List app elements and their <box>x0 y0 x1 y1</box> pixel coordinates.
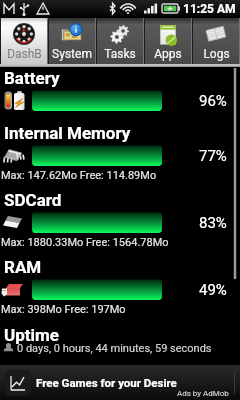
button[interactable]: Apps <box>144 18 192 64</box>
staticText: Uptime <box>4 325 59 345</box>
staticText: 0 days, 0 hours, 44 minutes, 59 seconds <box>17 342 212 355</box>
staticText: 77% <box>199 147 227 165</box>
staticText: 49% <box>199 281 227 299</box>
staticText: 83% <box>199 214 227 232</box>
staticText: Free Games for your Desire <box>36 376 177 389</box>
button[interactable]: Battery <box>0 68 240 118</box>
staticText: 96% <box>199 92 227 110</box>
staticText: RAM <box>4 257 42 277</box>
button[interactable]: Tasks <box>96 18 144 64</box>
staticText: SDCard <box>4 190 62 210</box>
staticText: Internal Memory <box>4 123 131 143</box>
button[interactable]: RAM <box>0 257 240 319</box>
staticText: Tasks <box>104 47 136 61</box>
staticText: 11:25 AM <box>183 2 236 16</box>
button[interactable]: Internal Memory <box>0 123 240 185</box>
staticText: DashB <box>7 47 42 61</box>
button[interactable]: Free Games for your Desire <box>0 365 240 400</box>
button[interactable]: DashB <box>0 18 48 64</box>
button[interactable]: Logs <box>192 18 240 64</box>
staticText: Max: 147.62Mo Free: 114.89Mo <box>1 169 157 182</box>
button[interactable]: System <box>48 18 96 64</box>
button[interactable]: SDCard <box>0 190 240 252</box>
staticText: Apps <box>154 47 182 61</box>
staticText: Battery <box>4 68 60 88</box>
staticText: Max: 1880.33Mo Free: 1564.78Mo <box>1 236 169 249</box>
staticText: Max: 398Mo Free: 197Mo <box>1 303 126 316</box>
staticText: Ads by AdMob <box>177 389 229 398</box>
staticText: System <box>52 47 92 61</box>
staticText: Logs <box>203 47 230 61</box>
button[interactable]: Uptime <box>0 325 240 345</box>
